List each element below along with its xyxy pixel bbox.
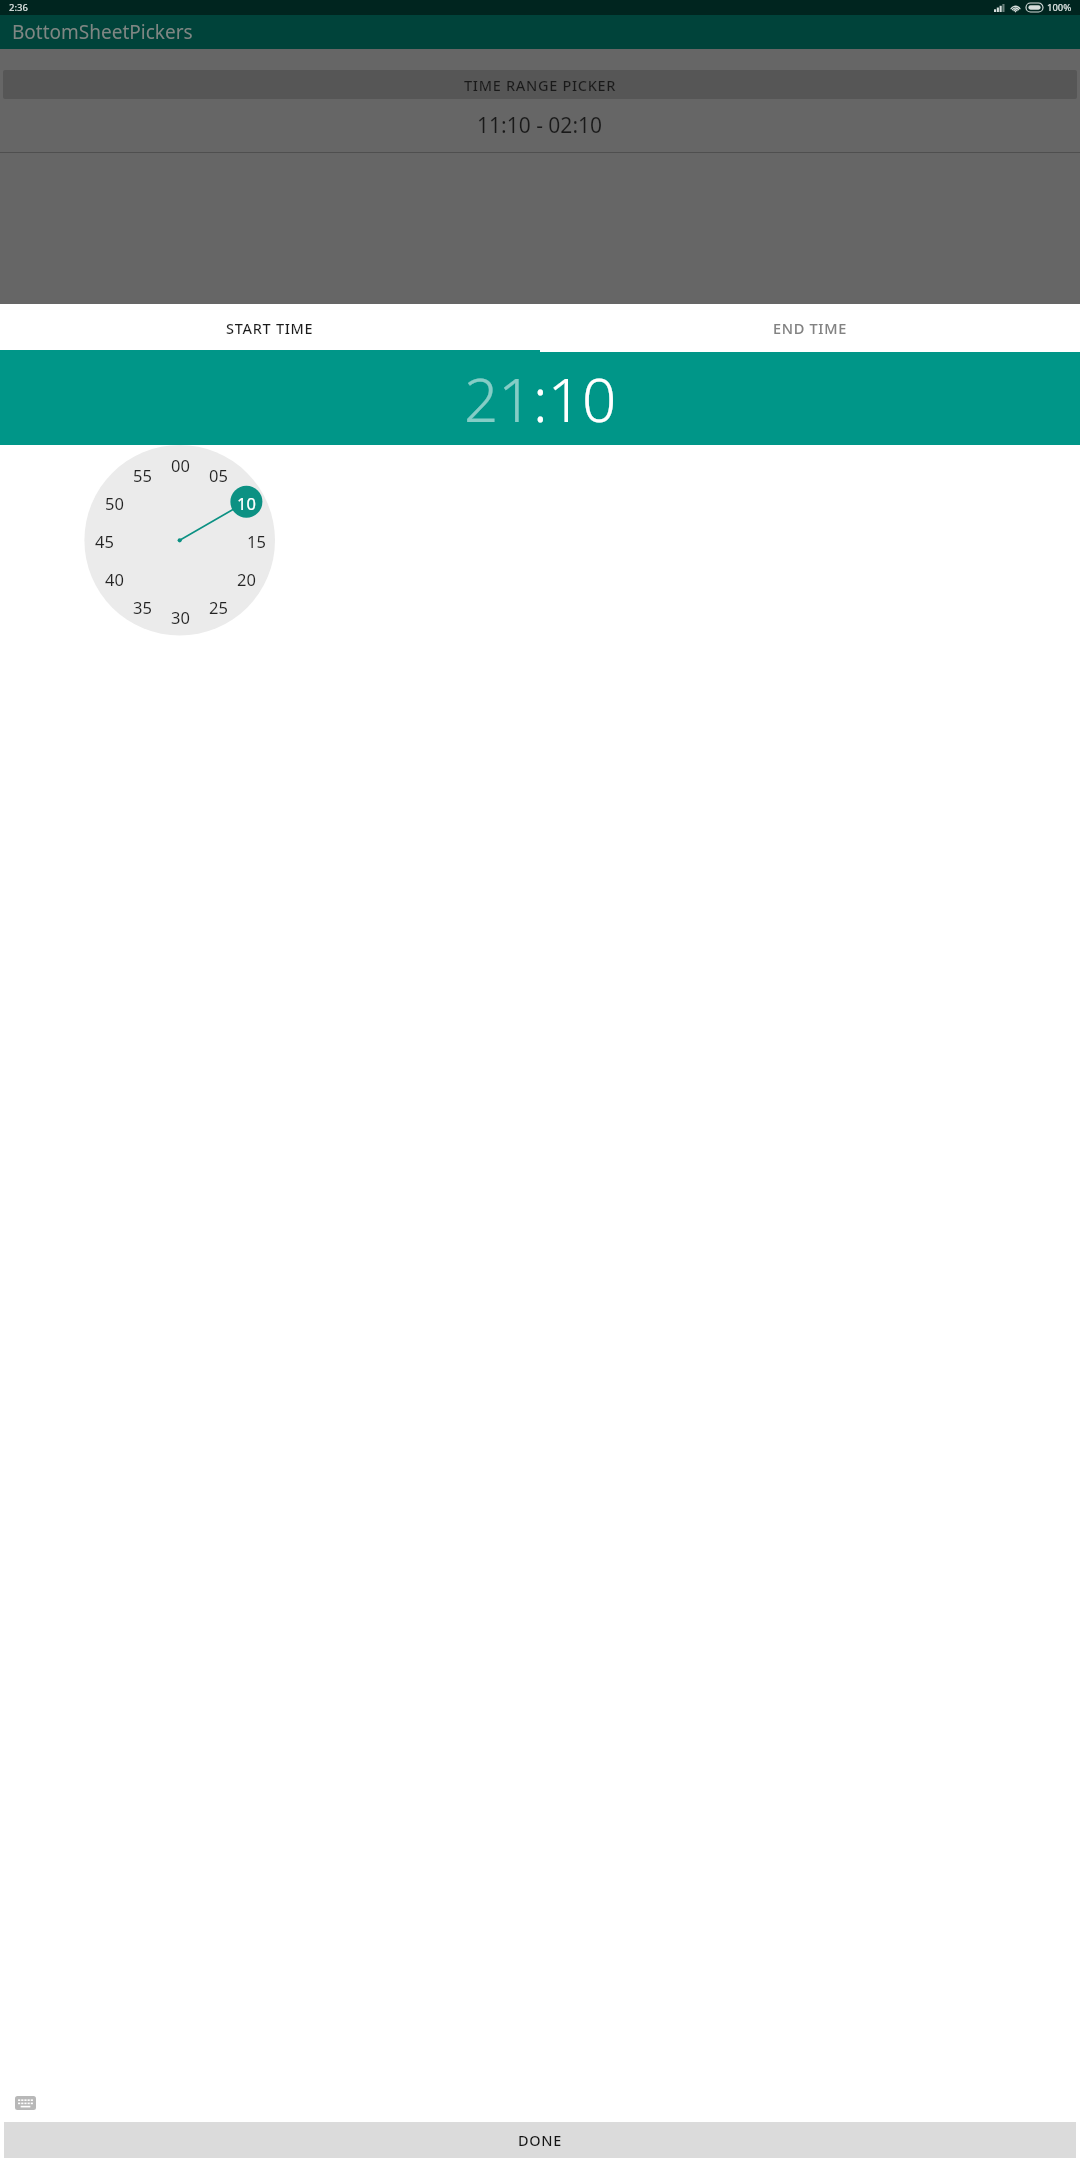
- staticText: 40: [105, 568, 124, 588]
- staticText: 2:36: [9, 1, 28, 14]
- button[interactable]: Switch to keyboard input: [15, 2096, 36, 2110]
- button[interactable]: 21: [0, 352, 1080, 445]
- staticText: 05: [209, 464, 228, 484]
- staticText: 100%: [1047, 1, 1072, 14]
- staticText: DONE: [518, 2130, 563, 2150]
- staticText: 15: [247, 530, 266, 550]
- staticText: BottomSheetPickers: [12, 19, 193, 45]
- staticText: 11:10 - 02:10: [477, 111, 603, 140]
- staticText: 20: [237, 568, 256, 588]
- staticText: 50: [105, 492, 124, 512]
- staticText: 21: [464, 358, 533, 440]
- staticText: 35: [133, 596, 152, 616]
- staticText: 45: [95, 530, 114, 550]
- staticText: 25: [209, 596, 228, 616]
- staticText: :10: [533, 358, 617, 440]
- staticText: END TIME: [773, 318, 847, 338]
- button[interactable]: START TIME: [0, 304, 540, 352]
- staticText: START TIME: [226, 318, 314, 338]
- staticText: 00: [171, 454, 190, 474]
- button[interactable]: DONE: [4, 2122, 1076, 2158]
- button[interactable]: TIME RANGE PICKER: [3, 70, 1077, 99]
- staticText: 10: [237, 492, 256, 512]
- staticText: 30: [171, 606, 190, 626]
- staticText: 55: [133, 464, 152, 484]
- button[interactable]: Minute dial: [0, 445, 1080, 2122]
- button[interactable]: END TIME: [540, 304, 1080, 352]
- staticText: TIME RANGE PICKER: [464, 75, 617, 95]
